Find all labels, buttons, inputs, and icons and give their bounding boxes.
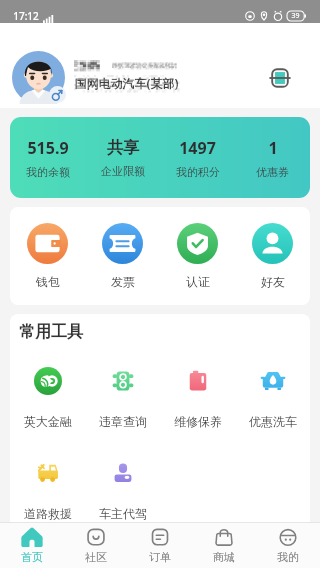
staticText: 好友	[261, 274, 285, 289]
button[interactable]: 首页	[0, 523, 64, 568]
staticText: 常用工具	[19, 322, 83, 342]
staticText: 优惠洗车	[249, 414, 297, 429]
button[interactable]: 共享	[85, 138, 160, 178]
staticText: 车主代驾	[99, 506, 147, 521]
staticText: 我的余额	[26, 165, 70, 179]
button[interactable]: 违章查询	[85, 367, 160, 429]
button[interactable]: 英大金融	[10, 367, 85, 429]
button[interactable]: 1497	[160, 137, 235, 179]
button[interactable]: Scan QR code	[262, 60, 298, 96]
button[interactable]: 515.9	[10, 137, 85, 179]
staticText: 39	[291, 11, 300, 21]
button[interactable]: 我的	[256, 523, 320, 568]
button[interactable]: 维修保养	[160, 367, 235, 429]
button[interactable]: 订单	[128, 523, 192, 568]
staticText: 1497	[179, 137, 216, 159]
staticText: 企业限额	[101, 164, 145, 178]
staticText: 英大金融	[24, 414, 72, 429]
staticText: 515.9	[27, 137, 69, 159]
button[interactable]: 道路救援	[10, 459, 85, 521]
staticText: 违章查询	[99, 414, 147, 429]
staticText: 共享	[107, 138, 139, 158]
staticText: 优惠券	[256, 165, 289, 179]
staticText: 商城	[213, 550, 235, 564]
button[interactable]: 优惠洗车	[235, 367, 310, 429]
button[interactable]: 钱包	[10, 223, 85, 289]
staticText: 认证	[186, 274, 210, 289]
button[interactable]: 认证	[160, 223, 235, 289]
staticText: 我的	[277, 550, 299, 564]
button[interactable]: 1	[235, 137, 310, 179]
staticText: 国网电动汽车(某部)	[74, 75, 179, 91]
staticText: 17:12	[13, 9, 39, 23]
staticText: 钱包	[36, 274, 60, 289]
button[interactable]: 社区	[64, 523, 128, 568]
staticText: 发票	[111, 274, 135, 289]
button[interactable]: 车主代驾	[85, 459, 160, 521]
staticText: 首页	[21, 550, 43, 564]
staticText: 订单	[149, 550, 171, 564]
button[interactable]: 好友	[235, 223, 310, 289]
staticText: 我的积分	[176, 165, 220, 179]
staticText: 道路救援	[24, 506, 72, 521]
staticText: 社区	[85, 550, 107, 564]
staticText: 维修保养	[174, 414, 222, 429]
button[interactable]: 商城	[192, 523, 256, 568]
staticText: 1	[268, 137, 278, 159]
button[interactable]: 发票	[85, 223, 160, 289]
